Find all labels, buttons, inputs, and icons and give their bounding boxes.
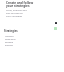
staticText: Strategies: [4, 29, 18, 33]
staticText: Morning: [5, 35, 14, 38]
staticText: Reading: [5, 41, 14, 44]
button[interactable]: Reading: [4, 41, 61, 44]
button[interactable]: Morning: [4, 35, 61, 38]
staticText: Write, improve and stay focused on your …: [6, 9, 27, 18]
button[interactable]: Add strategy: [55, 22, 57, 24]
staticText: Deep work: [5, 38, 16, 41]
button[interactable]: Deep work: [4, 38, 61, 41]
staticText: Evening: [5, 44, 13, 47]
staticText: Create and follow your strategies: [6, 1, 34, 8]
button[interactable]: Evening: [4, 44, 61, 47]
